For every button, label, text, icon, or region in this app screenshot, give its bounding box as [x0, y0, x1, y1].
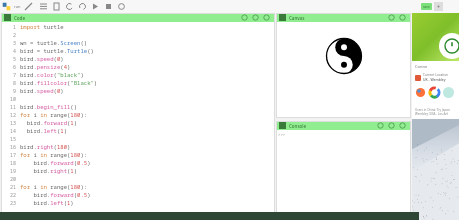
button[interactable]: Header action 2: [398, 13, 407, 22]
staticText: UK - Wembley: [423, 77, 446, 82]
button[interactable]: Menu: [39, 2, 48, 11]
button[interactable]: save: [421, 3, 432, 10]
button[interactable]: Header action 1: [387, 13, 396, 22]
staticText: 19: [10, 168, 17, 175]
button[interactable]: 1: [1, 22, 275, 219]
staticText: bird.color("black"): [20, 71, 84, 79]
staticText: Console: [289, 123, 307, 129]
staticText: >>>: [278, 132, 286, 137]
button[interactable]: Download: [439, 33, 459, 59]
staticText: Current Location: [423, 73, 449, 77]
button[interactable]: Header action 2: [251, 13, 260, 22]
button[interactable]: Header action 3: [262, 13, 271, 22]
button[interactable]: Stop: [104, 2, 113, 11]
staticText: 5: [13, 56, 17, 63]
staticText: bird.pensize(4): [20, 63, 71, 71]
staticText: 13: [10, 120, 17, 127]
button[interactable]: Panel menu: [278, 13, 287, 22]
staticText: save: [423, 5, 430, 9]
button[interactable]: Panel menu: [3, 13, 12, 22]
button[interactable]: Redo: [78, 2, 87, 11]
staticText: 16: [10, 144, 17, 151]
staticText: bird.begin_fill(): [20, 103, 78, 111]
staticText: bird.fillcolor("Black"): [20, 79, 98, 87]
staticText: bird.speed(0): [20, 87, 64, 95]
staticText: 6: [13, 64, 17, 71]
staticText: 21: [10, 184, 17, 191]
staticText: 11: [10, 104, 17, 111]
staticText: 15: [10, 136, 17, 143]
staticText: bird = turtle.Turtle(): [20, 47, 94, 55]
staticText: bird.speed(0): [20, 55, 64, 63]
staticText: 18: [10, 160, 17, 167]
staticText: for i in range(180):: [20, 111, 88, 119]
button[interactable]: Edit: [24, 2, 33, 11]
button[interactable]: File: [52, 2, 61, 11]
staticText: bird.left(1): [20, 199, 74, 207]
staticText: 7: [13, 72, 17, 79]
staticText: 23: [10, 200, 17, 207]
staticText: 2: [13, 32, 17, 39]
button[interactable]: Firefox: [415, 87, 426, 98]
staticText: bird.forward(0.5): [20, 159, 91, 167]
button[interactable]: Header action 3: [398, 121, 407, 130]
button[interactable]: More options: [434, 2, 443, 11]
button[interactable]: Panel menu: [278, 121, 287, 130]
staticText: 17: [10, 152, 17, 159]
staticText: 4: [13, 48, 17, 55]
staticText: 22: [10, 192, 17, 199]
button[interactable]: Run: [91, 2, 100, 11]
button[interactable]: [276, 22, 411, 118]
staticText: 20: [10, 176, 17, 183]
staticText: Users in China: Try Japan: [415, 108, 450, 112]
staticText: Wembley (USA - Los An): [415, 112, 449, 116]
staticText: for i in range(180):: [20, 183, 88, 191]
staticText: 9: [13, 88, 17, 95]
button[interactable]: Settings: [117, 2, 126, 11]
button[interactable]: Other browser: [443, 87, 454, 98]
staticText: 14: [10, 128, 17, 135]
staticText: Conne: [415, 64, 428, 69]
button[interactable]: Header action 1: [240, 13, 249, 22]
button[interactable]: Header action 1: [376, 121, 385, 130]
staticText: bird.right(180): [20, 143, 71, 151]
staticText: 3: [13, 40, 17, 47]
staticText: Canvas: [289, 15, 305, 21]
staticText: bird.right(1): [20, 167, 78, 175]
staticText: 8: [13, 80, 17, 87]
staticText: 10: [10, 96, 17, 103]
staticText: for i in range(180):: [20, 151, 88, 159]
staticText: 12: [10, 112, 17, 119]
staticText: Code: [14, 15, 25, 21]
staticText: wn = turtle.Screen(): [20, 39, 88, 47]
staticText: bird.forward(0.5): [20, 191, 91, 199]
button[interactable]: >>>: [276, 130, 411, 219]
button[interactable]: Google: [429, 87, 440, 98]
staticText: bird.left(1): [20, 127, 67, 135]
staticText: 1: [13, 24, 17, 31]
staticText: bird.forward(1): [20, 119, 78, 127]
button[interactable]: Header action 2: [387, 121, 396, 130]
staticText: import turtle: [20, 23, 64, 31]
staticText: run: [14, 4, 21, 9]
button[interactable]: Undo: [65, 2, 74, 11]
button[interactable]: Python: [2, 2, 11, 11]
